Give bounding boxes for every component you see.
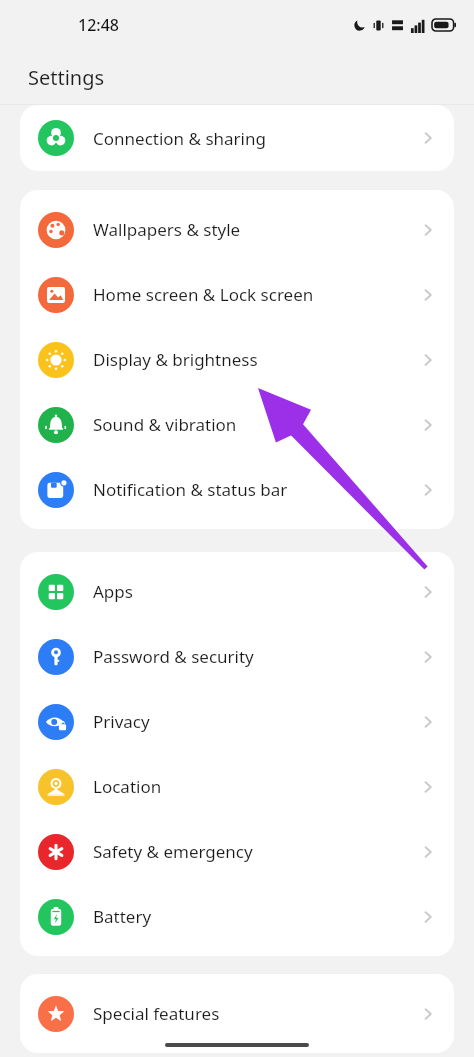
staticText: Password & security bbox=[93, 645, 418, 668]
button[interactable]: Connection & sharing bbox=[20, 105, 454, 171]
button[interactable]: Battery bbox=[20, 884, 454, 949]
button[interactable]: Location bbox=[20, 754, 454, 819]
button[interactable]: Sound & vibration bbox=[20, 392, 454, 457]
staticText: Location bbox=[93, 775, 418, 798]
button[interactable]: Wallpapers & style bbox=[20, 197, 454, 262]
staticText: Connection & sharing bbox=[93, 127, 418, 150]
staticText: Notification & status bar bbox=[93, 478, 418, 501]
button[interactable]: Display & brightness bbox=[20, 327, 454, 392]
staticText: Wallpapers & style bbox=[93, 218, 418, 241]
button[interactable]: Safety & emergency bbox=[20, 819, 454, 884]
button[interactable]: Password & security bbox=[20, 624, 454, 689]
staticText: Privacy bbox=[93, 710, 418, 733]
button[interactable]: Special features bbox=[20, 981, 454, 1046]
button[interactable]: Apps bbox=[20, 559, 454, 624]
button[interactable]: Privacy bbox=[20, 689, 454, 754]
button[interactable]: Notification & status bar bbox=[20, 457, 454, 522]
staticText: 12:48 bbox=[78, 14, 119, 36]
staticText: Home screen & Lock screen bbox=[93, 283, 418, 306]
staticText: Apps bbox=[93, 580, 418, 603]
button[interactable]: Home screen & Lock screen bbox=[20, 262, 454, 327]
staticText: Display & brightness bbox=[93, 348, 418, 371]
staticText: Settings bbox=[28, 64, 105, 91]
staticText: Sound & vibration bbox=[93, 413, 418, 436]
staticText: Safety & emergency bbox=[93, 840, 418, 863]
staticText: Special features bbox=[93, 1002, 418, 1025]
staticText: Battery bbox=[93, 905, 418, 928]
